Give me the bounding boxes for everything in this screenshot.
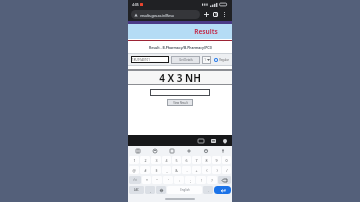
button[interactable]: View Result <box>167 99 193 106</box>
button[interactable]: Voice input <box>219 147 226 154</box>
button[interactable]: Get Details <box>171 56 200 64</box>
button[interactable]: Settings <box>185 147 192 154</box>
button[interactable]: Regular <box>214 58 229 62</box>
staticText: ' <box>168 178 169 183</box>
button[interactable]: & <box>172 166 181 174</box>
staticText: Result - B.Pharmacy/B.Pharmacy(PCI) <box>149 45 212 50</box>
button[interactable]: _ <box>162 166 171 174</box>
button[interactable]: Enter <box>214 186 231 194</box>
staticText: English <box>180 188 190 192</box>
button[interactable]: ABC <box>129 186 144 194</box>
button[interactable]: Stickers <box>151 147 158 154</box>
button[interactable]: # <box>140 166 150 174</box>
button[interactable]: ) <box>212 166 221 174</box>
staticText: Results <box>194 27 218 36</box>
staticText: 18U91A0101 <box>132 58 150 62</box>
button[interactable] <box>150 89 210 96</box>
staticText: 9 <box>215 158 218 163</box>
button[interactable]: , <box>145 186 155 194</box>
button[interactable]: Hide keyboard <box>197 137 205 145</box>
staticText: 7 <box>195 158 198 163</box>
button[interactable]: 4 <box>162 156 171 164</box>
staticText: View Result <box>173 101 188 105</box>
button[interactable]: 1 <box>129 156 139 164</box>
staticText: 6 <box>185 158 188 163</box>
staticText: ( <box>206 168 208 173</box>
staticText: $ <box>155 168 158 173</box>
button[interactable]: 8 <box>202 156 211 164</box>
button[interactable]: English <box>167 186 202 194</box>
button[interactable]: 7 <box>192 156 201 164</box>
button[interactable]: 2 <box>140 156 150 164</box>
button[interactable]: 9 <box>212 156 221 164</box>
staticText: . <box>208 188 209 193</box>
button[interactable]: GIF <box>168 147 175 154</box>
staticText: @ <box>132 168 136 173</box>
button[interactable]: . <box>203 186 213 194</box>
button[interactable]: 1 <box>202 56 211 64</box>
staticText: 8 <box>205 158 208 163</box>
button[interactable]: Backspace <box>218 176 231 184</box>
staticText: Regular <box>219 58 229 62</box>
button[interactable]: More options <box>220 10 229 19</box>
button[interactable]: Switch language <box>156 186 166 194</box>
staticText: =\< <box>133 178 137 182</box>
button[interactable]: ; <box>185 176 195 184</box>
staticText: results.gov.ac.in/Resu <box>140 13 174 17</box>
staticText: 1 <box>133 158 136 163</box>
staticText: - <box>186 168 188 173</box>
button[interactable]: Autofill <box>209 137 217 145</box>
button[interactable]: results.gov.ac.in/Resu <box>131 10 200 19</box>
button[interactable]: New tab <box>202 10 211 19</box>
button[interactable]: Tabs <box>211 10 220 19</box>
button[interactable]: ( <box>202 166 211 174</box>
staticText: 2 <box>144 158 147 163</box>
staticText: " <box>156 178 158 183</box>
button[interactable]: / <box>222 166 231 174</box>
button[interactable]: ' <box>163 176 173 184</box>
staticText: , <box>150 188 151 193</box>
staticText: 5 <box>175 158 178 163</box>
staticText: * <box>146 178 148 183</box>
button[interactable]: @ <box>129 166 139 174</box>
staticText: Get Details <box>179 58 193 62</box>
button[interactable]: + <box>192 166 201 174</box>
staticText: 1 <box>204 58 206 62</box>
staticText: + <box>195 168 198 173</box>
button[interactable]: - <box>182 166 191 174</box>
staticText: ? <box>211 178 213 183</box>
staticText: # <box>144 168 147 173</box>
staticText: ! <box>201 178 202 183</box>
button[interactable]: Emoji <box>202 147 209 154</box>
button[interactable]: ? <box>207 176 217 184</box>
button[interactable]: Clipboard <box>134 147 141 154</box>
staticText: 3 <box>155 158 158 163</box>
staticText: 4 X 3 NH <box>159 71 201 84</box>
staticText: _ <box>166 168 168 173</box>
button[interactable]: 5 <box>172 156 181 164</box>
button[interactable]: $ <box>151 166 161 174</box>
staticText: / <box>226 168 228 173</box>
staticText: ) <box>216 168 218 173</box>
button[interactable]: =\< <box>129 176 141 184</box>
button[interactable]: 0 <box>222 156 231 164</box>
staticText: & <box>175 168 178 173</box>
button[interactable]: 18U91A0101 <box>131 56 169 63</box>
staticText: : <box>179 178 180 183</box>
staticText: 1 <box>215 13 217 17</box>
staticText: 4:05 <box>132 3 139 7</box>
staticText: 0 <box>225 158 228 163</box>
button[interactable]: 6 <box>182 156 191 164</box>
button[interactable]: * <box>142 176 151 184</box>
staticText: ; <box>190 178 191 183</box>
button[interactable]: " <box>152 176 162 184</box>
button[interactable]: : <box>174 176 184 184</box>
staticText: 4 <box>165 158 168 163</box>
staticText: ABC <box>134 188 139 192</box>
button[interactable]: Address <box>221 137 229 145</box>
button[interactable]: 3 <box>151 156 161 164</box>
button[interactable]: ! <box>196 176 206 184</box>
